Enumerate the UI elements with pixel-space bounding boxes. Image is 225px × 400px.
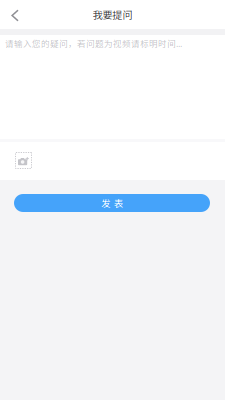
staticText: 发 表 [101,196,123,210]
button[interactable]: 发 表 [14,194,210,212]
button[interactable]: Add photo [15,152,32,169]
staticText: 我要提问 [92,7,132,22]
button[interactable]: Back [0,0,30,29]
staticText: 请输入您的疑问，若问题为视频请标明时间... [5,37,182,49]
button[interactable]: 请输入您的疑问，若问题为视频请标明时间... [0,35,225,139]
